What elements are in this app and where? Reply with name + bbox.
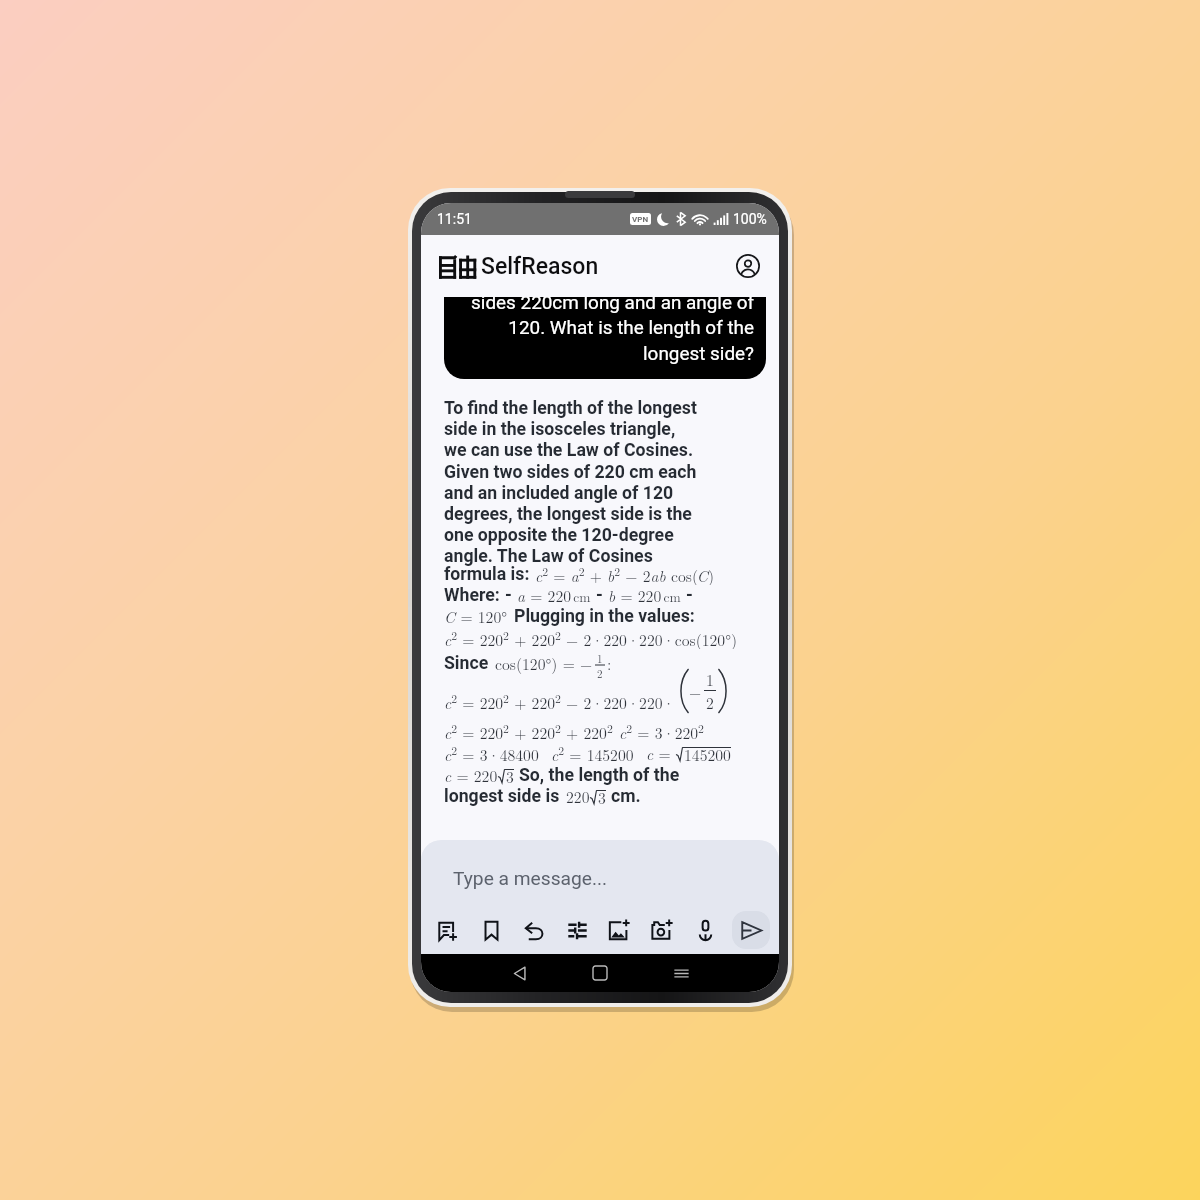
button[interactable]: New note [432, 914, 464, 946]
button[interactable]: Camera [646, 914, 678, 946]
staticText: we can use the Law of Cosines. [444, 440, 694, 461]
button[interactable]: Bookmark [475, 914, 507, 946]
staticText: c2 = 2202 + 2202 − 2·220·220·cos(120°) [444, 627, 738, 649]
staticText: c = 220 [444, 764, 498, 786]
staticText: b = 220 cm [608, 584, 681, 606]
staticText: 11:51 [437, 211, 472, 227]
staticText: 1 [706, 668, 714, 690]
staticText: So, the length of the [519, 765, 680, 786]
staticText: Plugging in the values: [514, 606, 695, 627]
staticText: one opposite the 120-degree [444, 525, 674, 546]
button[interactable]: Voice input [689, 914, 721, 946]
staticText: VPN [632, 215, 649, 224]
staticText: 2 [706, 691, 714, 713]
staticText: longest side is [444, 786, 560, 807]
staticText: a = 220 cm [517, 584, 591, 606]
staticText: c2 = 145200 [551, 742, 634, 764]
button[interactable]: Undo [518, 914, 550, 946]
staticText: - [505, 585, 512, 606]
staticText: - [686, 585, 693, 606]
staticText: c2 = 2202 + 2202 + 2202 [444, 720, 613, 742]
button[interactable]: Add image [603, 914, 635, 946]
staticText: − [689, 680, 702, 702]
staticText: 220 [566, 785, 590, 807]
staticText: Where: [444, 585, 500, 606]
staticText: cm. [611, 786, 641, 807]
button[interactable]: Home [581, 954, 619, 992]
button[interactable]: Back [500, 954, 538, 992]
staticText: To find the length of the longest [444, 398, 697, 419]
staticText: - [596, 585, 603, 606]
staticText: c2 = 3·48400 [444, 742, 539, 764]
staticText: Type a message... [453, 867, 608, 890]
staticText: : [607, 652, 612, 674]
button[interactable]: Settings [561, 914, 593, 946]
staticText: C = 120° [444, 605, 508, 627]
staticText: degrees, the longest side is the [444, 504, 692, 525]
button[interactable]: Type a message... [421, 840, 779, 906]
staticText: formula is: [444, 564, 530, 585]
staticText: cos(120°) = − [495, 652, 593, 674]
staticText: Given two sides of 220 cm each [444, 462, 697, 483]
button[interactable]: Account [731, 249, 765, 283]
staticText: and an included angle of 120 [444, 483, 674, 504]
staticText: angle. The Law of Cosines [444, 546, 653, 567]
staticText: c2 = 3·2202 [619, 720, 704, 742]
staticText: sides 220cm long and an angle of 120. Wh… [456, 297, 754, 365]
button[interactable]: Recents [662, 954, 700, 992]
button[interactable]: Send [732, 911, 770, 949]
staticText: SelfReason [481, 253, 599, 280]
staticText: 100% [733, 211, 767, 227]
staticText: c = [646, 742, 676, 764]
staticText: c2 = a2 + b2 − 2ab cos(C) [535, 563, 715, 585]
staticText: Since [444, 653, 489, 674]
staticText: side in the isosceles triangle, [444, 419, 676, 440]
staticText: c2 = 2202 + 2202 − 2·220·220· [444, 690, 675, 714]
